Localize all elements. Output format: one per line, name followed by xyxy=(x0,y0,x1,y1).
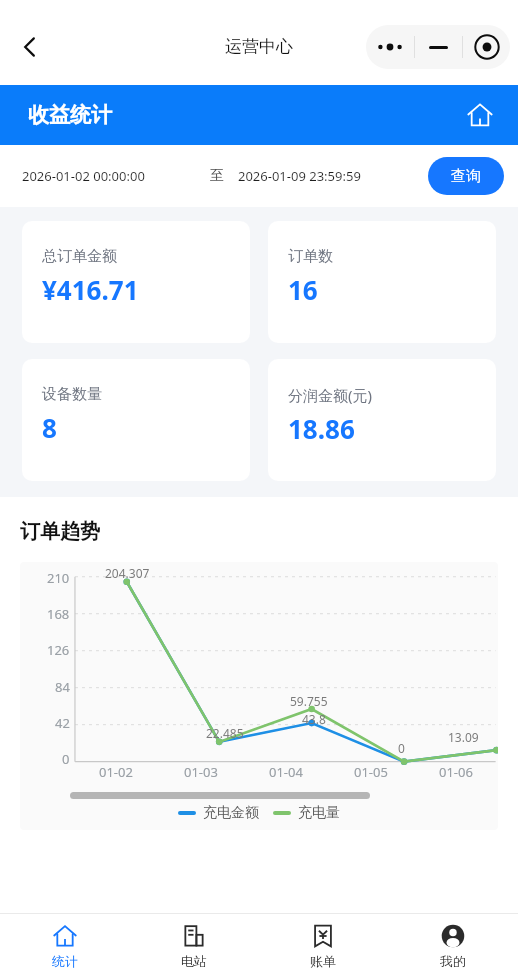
staticText: 运营中心 xyxy=(225,36,293,57)
staticText: 126 xyxy=(47,641,70,659)
staticText: 充电量 xyxy=(298,804,340,822)
staticText: 统计 xyxy=(52,953,78,969)
button[interactable]: 查询 xyxy=(428,157,504,195)
staticText: 210 xyxy=(47,569,70,587)
staticText: 13.09 xyxy=(448,729,479,745)
button[interactable]: 统计 xyxy=(0,914,129,978)
button[interactable]: Close xyxy=(463,25,510,69)
staticText: 订单趋势 xyxy=(20,519,100,544)
staticText: 电站 xyxy=(181,953,207,969)
staticText: 设备数量 xyxy=(42,385,102,404)
staticText: 充电金额 xyxy=(203,804,259,822)
staticText: 42 xyxy=(55,714,70,732)
staticText: 01-06 xyxy=(439,763,473,781)
button[interactable]: 2026-01-09 23:59:59 xyxy=(238,167,361,185)
staticText: 账单 xyxy=(310,953,336,969)
staticText: 查询 xyxy=(451,167,481,186)
staticText: 204.307 xyxy=(105,565,150,581)
button[interactable]: 2026-01-02 00:00:00 xyxy=(22,167,145,185)
staticText: 订单数 xyxy=(288,247,333,266)
staticText: 43.8 xyxy=(302,711,326,727)
button[interactable]: 设备数量 xyxy=(22,359,250,481)
staticText: 16 xyxy=(288,272,318,307)
button[interactable]: 分润金额(元) xyxy=(268,359,496,481)
button[interactable]: 账单 xyxy=(258,914,388,978)
staticText: 01-04 xyxy=(269,763,303,781)
staticText: 01-02 xyxy=(99,763,133,781)
staticText: 168 xyxy=(47,605,70,623)
button[interactable]: Minimize xyxy=(415,25,462,69)
staticText: 01-03 xyxy=(184,763,218,781)
button[interactable]: 我的 xyxy=(388,914,518,978)
staticText: 18.86 xyxy=(288,411,355,446)
button[interactable]: 订单数 xyxy=(268,221,496,343)
button[interactable]: Back xyxy=(8,25,52,69)
staticText: 22.485 xyxy=(206,725,244,741)
staticText: 我的 xyxy=(440,953,466,969)
staticText: 59.755 xyxy=(290,693,328,709)
staticText: 0 xyxy=(62,750,70,768)
button[interactable]: 总订单金额 xyxy=(22,221,250,343)
staticText: ¥416.71 xyxy=(42,272,139,307)
staticText: 至 xyxy=(210,167,224,185)
staticText: 总订单金额 xyxy=(42,247,117,266)
button[interactable]: Home xyxy=(460,95,500,135)
staticText: 01-05 xyxy=(354,763,388,781)
staticText: 8 xyxy=(42,410,57,445)
staticText: 84 xyxy=(55,678,70,696)
staticText: 收益统计 xyxy=(28,102,112,128)
button[interactable]: 电站 xyxy=(129,914,258,978)
button[interactable]: More xyxy=(366,25,414,69)
staticText: 0 xyxy=(398,740,405,756)
staticText: 分润金额(元) xyxy=(288,385,373,405)
